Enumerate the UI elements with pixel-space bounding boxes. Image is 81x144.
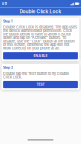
staticText: Double Click Lock bbox=[19, 9, 61, 14]
button[interactable]: ENABLE bbox=[3, 52, 78, 59]
staticText: Double Click Lock is disabled. The app u… bbox=[3, 25, 77, 50]
staticText: Step 2 bbox=[3, 65, 13, 70]
staticText: 4:11 bbox=[1, 2, 6, 6]
staticText: TEST bbox=[36, 82, 44, 87]
staticText: Double tap the TEST button to try Double… bbox=[3, 71, 69, 79]
staticText: Step 1 bbox=[3, 19, 12, 23]
button[interactable]: TEST bbox=[3, 81, 78, 88]
staticText: ENABLE bbox=[33, 54, 47, 58]
